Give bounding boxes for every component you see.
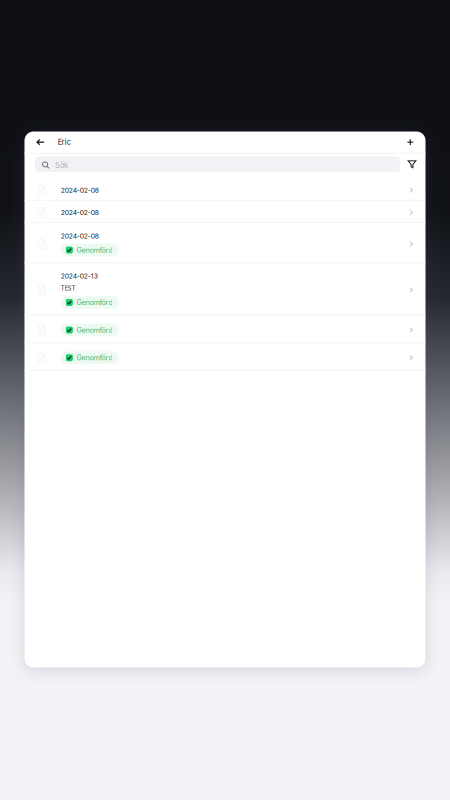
- staticText: Genomförd: [76, 298, 112, 307]
- button[interactable]: Genomförd: [24, 315, 425, 342]
- button[interactable]: 2024-02-08: [24, 201, 425, 222]
- button[interactable]: 2024-02-08: [24, 178, 425, 200]
- button[interactable]: Back: [29, 131, 52, 153]
- button[interactable]: 2024-02-13: [24, 263, 425, 314]
- staticText: Genomförd: [76, 246, 112, 254]
- staticText: 2024-02-08: [61, 232, 99, 240]
- staticText: Genomförd: [76, 326, 112, 334]
- button[interactable]: 2024-02-08: [24, 223, 425, 262]
- button[interactable]: Genomförd: [24, 343, 425, 370]
- staticText: 2024-02-08: [61, 208, 99, 217]
- staticText: 2024-02-08: [61, 186, 99, 194]
- staticText: Sök: [55, 161, 68, 170]
- staticText: TEST: [61, 285, 76, 292]
- staticText: Genomförd: [76, 353, 112, 362]
- button[interactable]: Filter: [400, 153, 424, 175]
- button[interactable]: Add: [398, 131, 422, 153]
- staticText: Eric: [58, 138, 71, 147]
- staticText: 2024-02-13: [61, 272, 98, 280]
